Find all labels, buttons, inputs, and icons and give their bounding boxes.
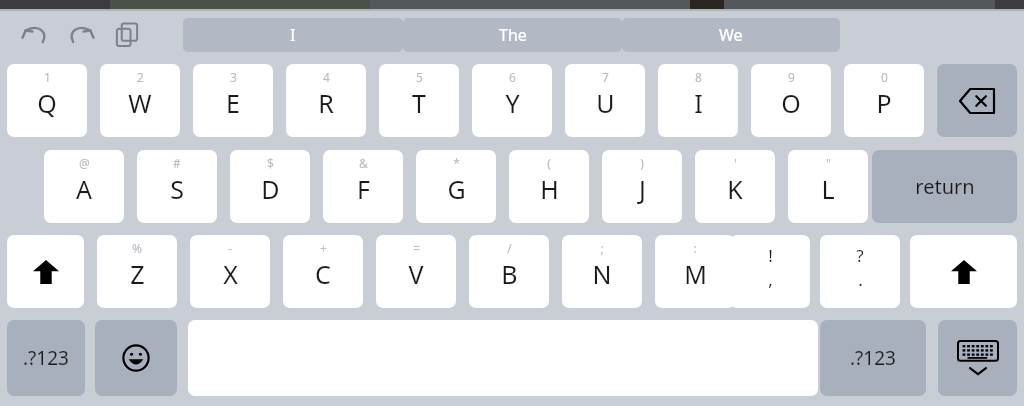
- staticText: X: [223, 257, 238, 291]
- button[interactable]: ": [788, 150, 868, 223]
- staticText: 8: [695, 69, 702, 85]
- staticText: ?: [856, 244, 864, 267]
- staticText: *: [453, 155, 460, 171]
- staticText: :: [693, 240, 697, 256]
- staticText: 5: [416, 69, 423, 85]
- staticText: 9: [788, 69, 795, 85]
- button[interactable]: 5: [379, 64, 459, 137]
- staticText: 6: [509, 69, 516, 85]
- staticText: !: [768, 244, 773, 267]
- button[interactable]: (: [509, 150, 589, 223]
- button[interactable]: 7: [565, 64, 645, 137]
- staticText: O: [781, 86, 801, 120]
- button[interactable]: 4: [286, 64, 366, 137]
- button[interactable]: .?123: [820, 320, 926, 396]
- staticText: &: [359, 155, 368, 171]
- staticText: Q: [37, 86, 57, 120]
- button[interactable]: ): [602, 150, 682, 223]
- button[interactable]: Hide keyboard: [938, 320, 1017, 396]
- button[interactable]: Emoji: [95, 320, 177, 396]
- staticText: F: [357, 172, 370, 206]
- button[interactable]: $: [230, 150, 310, 223]
- staticText: S: [170, 172, 184, 206]
- button[interactable]: Redo: [62, 18, 100, 52]
- staticText: K: [727, 172, 743, 206]
- button[interactable]: I: [183, 18, 403, 52]
- staticText: 7: [602, 69, 609, 85]
- staticText: B: [501, 257, 518, 291]
- staticText: $: [267, 155, 274, 171]
- button[interactable]: return: [872, 150, 1017, 223]
- staticText: 4: [323, 69, 330, 85]
- staticText: ;: [600, 240, 604, 256]
- staticText: D: [261, 172, 280, 206]
- button[interactable]: /: [469, 235, 549, 308]
- button[interactable]: The: [403, 18, 622, 52]
- staticText: P: [876, 86, 892, 120]
- staticText: 2: [137, 69, 144, 85]
- staticText: .?123: [850, 345, 896, 371]
- button[interactable]: 8: [658, 64, 738, 137]
- button[interactable]: Copy: [108, 18, 146, 52]
- staticText: W: [128, 86, 152, 120]
- staticText: L: [821, 172, 835, 206]
- button[interactable]: We: [622, 18, 840, 52]
- staticText: V: [408, 257, 424, 291]
- staticText: @: [79, 155, 90, 171]
- button[interactable]: 9: [751, 64, 831, 137]
- staticText: %: [132, 240, 142, 256]
- staticText: G: [447, 172, 466, 206]
- staticText: .: [858, 268, 863, 291]
- staticText: 3: [230, 69, 237, 85]
- staticText: J: [639, 172, 646, 206]
- button[interactable]: .?123: [7, 320, 85, 396]
- button[interactable]: -: [190, 235, 270, 308]
- staticText: +: [320, 240, 327, 256]
- button[interactable]: Undo: [16, 18, 54, 52]
- button[interactable]: 1: [7, 64, 87, 137]
- staticText: Z: [130, 257, 145, 291]
- staticText: The: [499, 24, 527, 46]
- staticText: C: [315, 257, 331, 291]
- button[interactable]: 2: [100, 64, 180, 137]
- staticText: Y: [505, 86, 520, 120]
- staticText: R: [318, 86, 334, 120]
- button[interactable]: Shift: [7, 235, 84, 308]
- staticText: N: [592, 257, 612, 291]
- staticText: T: [412, 86, 426, 120]
- staticText: =: [413, 240, 420, 256]
- button[interactable]: !: [730, 235, 810, 308]
- button[interactable]: ;: [562, 235, 642, 308]
- staticText: I: [290, 24, 296, 46]
- staticText: U: [596, 86, 615, 120]
- staticText: 0: [881, 69, 888, 85]
- staticText: /: [507, 240, 512, 256]
- staticText: H: [540, 172, 559, 206]
- staticText: ): [640, 155, 644, 171]
- button[interactable]: 3: [193, 64, 273, 137]
- button[interactable]: *: [416, 150, 496, 223]
- button[interactable]: +: [283, 235, 363, 308]
- staticText: M: [684, 257, 707, 291]
- staticText: I: [694, 86, 703, 120]
- staticText: A: [76, 172, 92, 206]
- button[interactable]: :: [655, 235, 735, 308]
- button[interactable]: #: [137, 150, 217, 223]
- button[interactable]: =: [376, 235, 456, 308]
- staticText: ,: [768, 268, 773, 291]
- button[interactable]: %: [97, 235, 177, 308]
- button[interactable]: ': [695, 150, 775, 223]
- button[interactable]: Shift: [910, 235, 1017, 308]
- staticText: ": [826, 155, 831, 171]
- button[interactable]: 6: [472, 64, 552, 137]
- button[interactable]: Backspace: [937, 64, 1017, 137]
- button[interactable]: ?: [820, 235, 900, 308]
- staticText: E: [226, 86, 240, 120]
- staticText: (: [547, 155, 551, 171]
- staticText: return: [915, 173, 975, 200]
- button[interactable]: @: [44, 150, 124, 223]
- button[interactable]: &: [323, 150, 403, 223]
- staticText: We: [719, 24, 743, 46]
- button[interactable]: 0: [844, 64, 924, 137]
